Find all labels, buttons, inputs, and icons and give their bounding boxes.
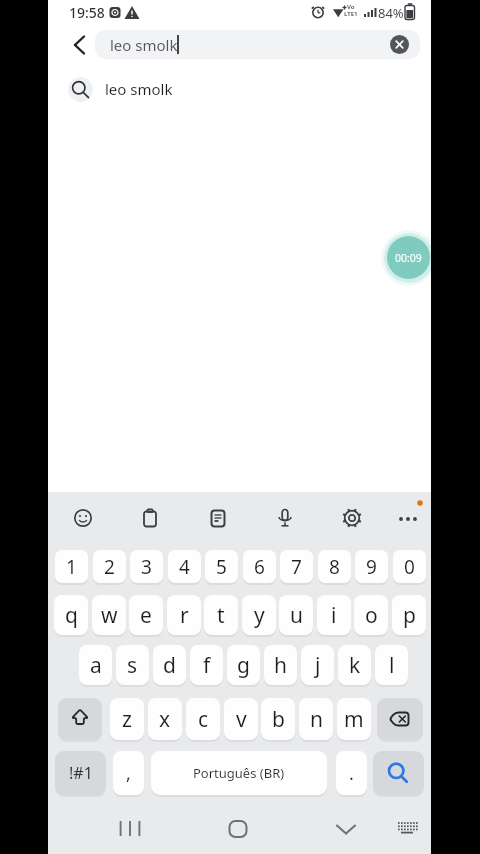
staticText: e [140,601,152,630]
staticText: k [349,651,361,680]
button[interactable]: d [153,645,186,685]
button[interactable] [64,31,92,59]
button[interactable]: t [204,595,238,635]
button[interactable]: 2 [93,550,126,583]
staticText: z [122,705,132,734]
staticText: i [331,601,337,630]
button[interactable]: , [113,751,144,795]
button[interactable]: v [224,698,258,740]
button[interactable]: 00:09 [387,236,430,279]
staticText: 19:58 [69,3,105,22]
button[interactable]: leo smolk [48,70,431,108]
button[interactable]: c [186,698,220,740]
button[interactable]: 1 [55,550,88,583]
button[interactable]: e [129,595,163,635]
button[interactable] [390,35,409,54]
button[interactable]: leo smolk [95,30,420,59]
button[interactable]: 0 [393,550,426,583]
staticText: 2 [104,554,115,580]
staticText: r [180,601,189,630]
staticText: q [65,601,78,630]
button[interactable]: s [116,645,149,685]
staticText: x [159,705,171,734]
staticText: 7 [291,554,302,580]
button[interactable]: 9 [355,550,388,583]
button[interactable]: r [167,595,201,635]
button[interactable] [200,500,236,536]
staticText: s [127,651,138,680]
button[interactable]: q [54,595,88,635]
staticText: c [198,705,209,734]
staticText: 0 [404,554,415,580]
button[interactable]: 5 [205,550,238,583]
staticText: o [365,601,378,630]
button[interactable]: j [301,645,334,685]
staticText: t [217,601,225,630]
button[interactable]: h [264,645,297,685]
staticText: l [389,651,395,680]
button[interactable]: 8 [318,550,351,583]
staticText: g [237,651,250,680]
button[interactable]: p [392,595,426,635]
staticText: m [344,705,364,734]
button[interactable]: x [148,698,182,740]
button[interactable]: w [92,595,126,635]
button[interactable]: u [279,595,313,635]
button[interactable]: y [242,595,276,635]
staticText: 5 [216,554,227,580]
staticText: 6 [254,554,265,580]
button[interactable] [65,500,101,536]
staticText: Português (BR) [193,764,285,782]
staticText: p [403,601,416,630]
button[interactable]: o [354,595,388,635]
button[interactable] [393,815,421,843]
button[interactable] [58,698,102,740]
button[interactable]: f [190,645,223,685]
staticText: b [272,705,285,734]
button[interactable]: !#1 [55,751,106,795]
button[interactable]: a [79,645,112,685]
staticText: 3 [141,554,152,580]
staticText: Vo [347,3,355,11]
button[interactable] [332,815,360,843]
staticText: !#1 [69,762,93,784]
button[interactable]: z [110,698,144,740]
button[interactable]: Português (BR) [151,751,327,795]
button[interactable]: . [336,751,367,795]
staticText: . [349,761,354,786]
button[interactable] [116,815,144,843]
staticText: y [254,601,265,630]
staticText: LTE1 [344,10,358,18]
staticText: w [101,601,118,630]
button[interactable] [132,500,168,536]
button[interactable]: b [261,698,295,740]
staticText: n [310,705,323,734]
staticText: f [203,651,211,680]
staticText: 8 [329,554,340,580]
button[interactable] [224,815,252,843]
staticText: leo smolk [105,79,173,99]
button[interactable]: 6 [243,550,276,583]
staticText: , [126,761,131,786]
button[interactable]: g [227,645,260,685]
button[interactable] [390,500,426,536]
button[interactable]: i [317,595,351,635]
button[interactable]: 7 [280,550,313,583]
staticText: leo smolk [110,35,178,55]
button[interactable] [373,751,424,795]
button[interactable] [334,500,370,536]
staticText: 84% [378,4,404,22]
staticText: v [236,705,247,734]
button[interactable]: n [299,698,333,740]
button[interactable]: l [375,645,408,685]
staticText: d [163,651,176,680]
button[interactable] [267,500,303,536]
staticText: 1 [66,554,77,580]
button[interactable]: 3 [130,550,163,583]
button[interactable]: m [337,698,371,740]
staticText: 9 [366,554,377,580]
staticText: j [315,651,321,680]
button[interactable]: k [338,645,371,685]
button[interactable]: 4 [168,550,201,583]
button[interactable] [377,698,423,740]
